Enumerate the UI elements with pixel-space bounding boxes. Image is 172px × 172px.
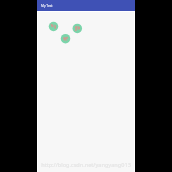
button[interactable]: Bubble (73, 23, 83, 33)
staticText: http://blog.csdn.net/yangyang013 (37, 161, 135, 169)
staticText: My Test (41, 4, 53, 8)
button[interactable]: My Test (37, 0, 135, 11)
button[interactable]: Bubble (61, 34, 71, 44)
button[interactable]: Bubble (49, 21, 59, 31)
